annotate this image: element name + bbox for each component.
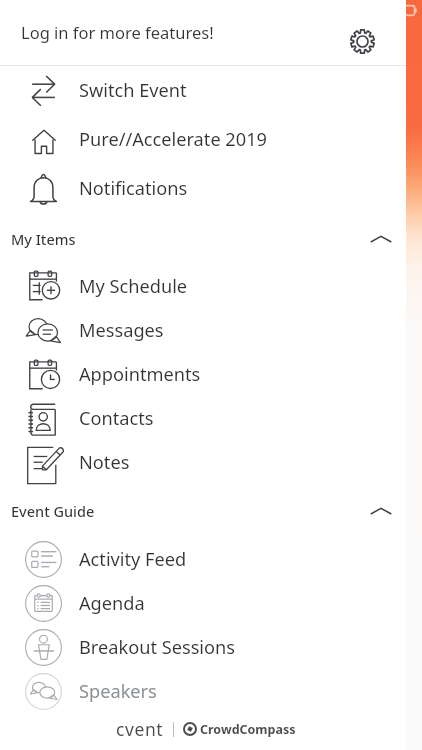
button[interactable]: Messages [0, 308, 406, 352]
staticText: Appointments [79, 362, 201, 387]
button[interactable]: Switch Event [0, 66, 406, 115]
button[interactable]: Appointments [0, 352, 406, 396]
button[interactable]: Speakers [0, 669, 406, 713]
staticText: Log in for more features! [21, 21, 214, 43]
staticText: Agenda [79, 591, 145, 616]
button[interactable]: Agenda [0, 581, 406, 625]
button[interactable]: Settings [344, 23, 380, 59]
button[interactable]: Activity Feed [0, 537, 406, 581]
staticText: Activity Feed [79, 547, 187, 572]
staticText: Event Guide [11, 501, 95, 521]
button[interactable]: Breakout Sessions [0, 625, 406, 669]
staticText: Switch Event [79, 78, 187, 103]
staticText: CrowdCompass [200, 721, 296, 738]
button[interactable]: Notes [0, 440, 406, 484]
button[interactable]: My Items [0, 213, 406, 264]
staticText: cvent [116, 717, 164, 741]
button[interactable]: Notifications [0, 164, 406, 213]
staticText: My Items [11, 229, 76, 249]
staticText: Notes [79, 450, 130, 475]
staticText: My Schedule [79, 274, 188, 299]
button[interactable]: Pure//Accelerate 2019 [0, 115, 406, 164]
button[interactable]: My Schedule [0, 264, 406, 308]
staticText: Breakout Sessions [79, 635, 235, 660]
staticText: Notifications [79, 176, 188, 201]
staticText: Messages [79, 318, 164, 343]
button[interactable]: Log in for more features! [0, 0, 406, 65]
staticText: Contacts [79, 406, 154, 431]
button[interactable]: Event Guide [0, 484, 406, 537]
button[interactable]: Contacts [0, 396, 406, 440]
staticText: Pure//Accelerate 2019 [79, 127, 267, 152]
staticText: Speakers [79, 679, 157, 704]
